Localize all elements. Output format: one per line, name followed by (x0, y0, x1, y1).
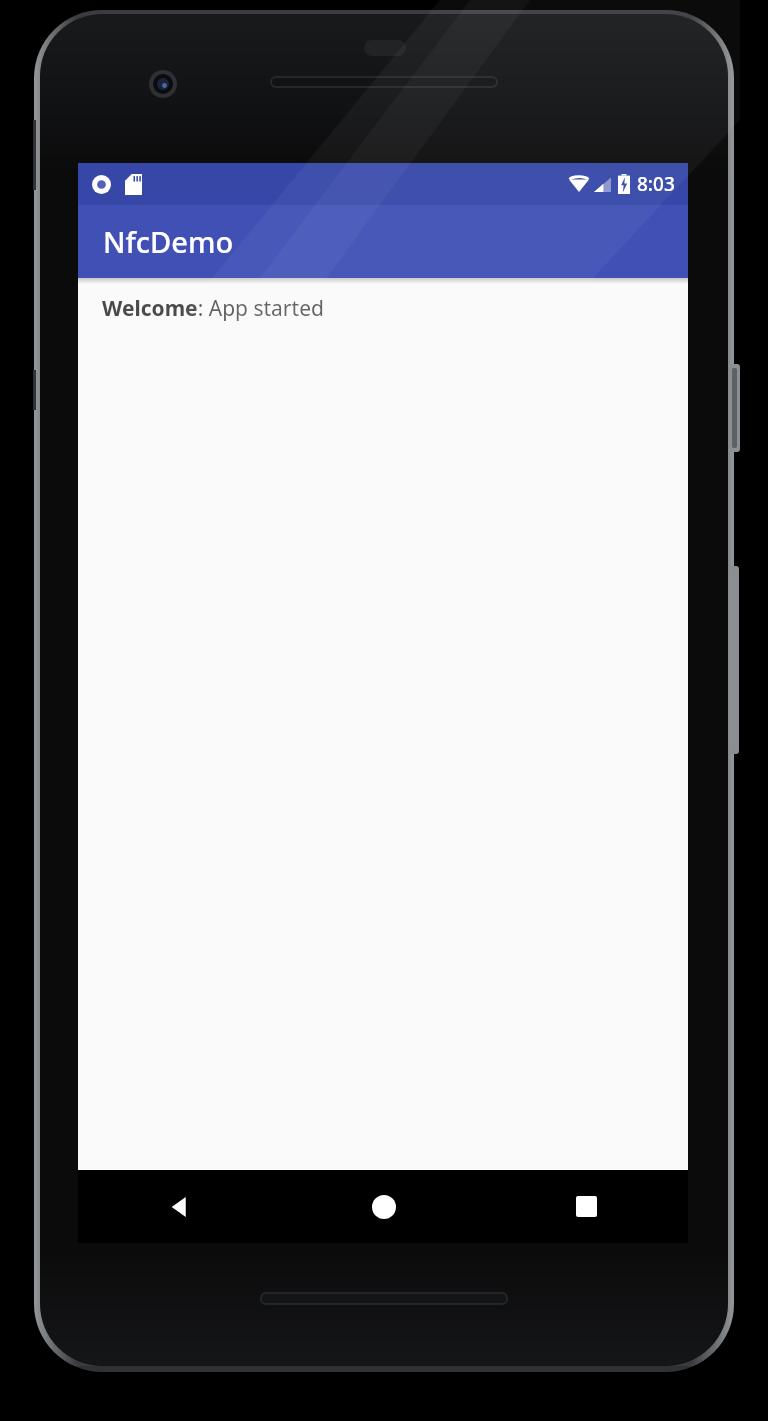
button[interactable]: Back (78, 1170, 282, 1243)
button[interactable]: Recent apps (485, 1170, 688, 1243)
staticText: Welcome: App started (102, 294, 324, 323)
staticText: NfcDemo (103, 222, 234, 261)
button[interactable]: Home (282, 1170, 485, 1243)
staticText: 8:03 (637, 171, 675, 197)
